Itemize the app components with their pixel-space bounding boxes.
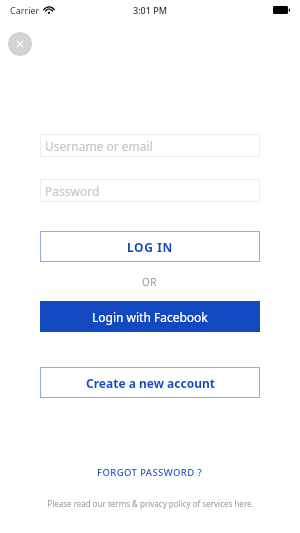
button[interactable]: LOG IN [40, 231, 260, 262]
button[interactable]: Login with Facebook [40, 301, 260, 332]
button[interactable]: Create a new account [40, 367, 260, 398]
staticText: Password [45, 183, 100, 199]
staticText: Username or email [45, 138, 153, 154]
staticText: 3:01 PM [133, 4, 167, 16]
staticText: FORGOT PASSWORD ? [97, 466, 203, 479]
button[interactable]: Password [40, 179, 260, 202]
staticText: Login with Facebook [92, 309, 208, 325]
staticText: LOG IN [127, 239, 173, 255]
button[interactable]: Username or email [40, 134, 260, 157]
button[interactable]: FORGOT PASSWORD ? [80, 462, 220, 482]
staticText: Create a new account [86, 375, 215, 391]
staticText: Please read our terms & privacy policy o… [47, 498, 254, 509]
staticText: OR [142, 275, 158, 289]
button[interactable]: Please read our terms & privacy policy o… [20, 498, 280, 509]
staticText: Carrier [10, 4, 40, 16]
button[interactable]: Close [8, 32, 32, 56]
